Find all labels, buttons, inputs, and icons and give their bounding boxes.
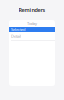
staticText: Selected (11, 27, 25, 32)
staticText: Reminders (18, 6, 45, 14)
staticText: Today (27, 21, 37, 26)
button[interactable]: Selected (9, 27, 55, 32)
staticText: Detail (11, 34, 21, 39)
button[interactable]: Detail (9, 32, 55, 41)
